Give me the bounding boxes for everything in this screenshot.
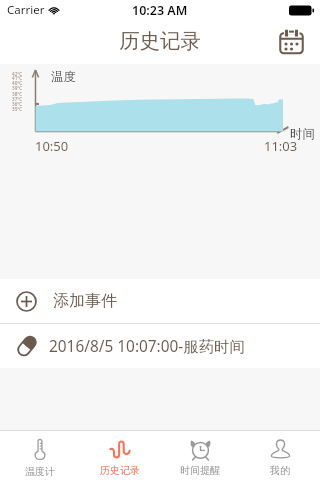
staticText: 41°C: [12, 75, 23, 81]
button[interactable]: Thermometer: [0, 431, 80, 480]
button[interactable]: 添加事件: [0, 279, 320, 323]
staticText: 11:03: [264, 137, 298, 155]
staticText: 37°C: [12, 96, 23, 102]
staticText: 历史记录: [100, 464, 140, 477]
staticText: 40°C: [12, 80, 23, 86]
button[interactable]: Reminder: [160, 431, 240, 480]
staticText: 38°C: [12, 91, 23, 97]
button[interactable]: 服药时间记录: [0, 324, 320, 368]
button[interactable]: History: [80, 431, 160, 480]
staticText: 35°C: [12, 106, 23, 112]
staticText: 10:50: [35, 137, 69, 155]
staticText: 温度计: [25, 465, 55, 478]
staticText: 36°C: [12, 101, 23, 107]
staticText: 2016/8/5 10:07:00-服药时间: [49, 336, 245, 357]
staticText: Carrier: [7, 2, 45, 18]
staticText: 10:23 AM: [132, 2, 188, 19]
staticText: 39°C: [12, 85, 23, 91]
staticText: 时间提醒: [180, 464, 220, 477]
staticText: 我的: [270, 464, 290, 477]
staticText: 时间: [290, 126, 315, 142]
staticText: 温度: [51, 69, 76, 85]
button[interactable]: Calendar: [274, 24, 308, 58]
button[interactable]: Profile: [240, 431, 320, 480]
staticText: 42°C: [12, 71, 23, 77]
staticText: 添加事件: [53, 291, 117, 311]
staticText: 历史记录: [119, 28, 201, 54]
